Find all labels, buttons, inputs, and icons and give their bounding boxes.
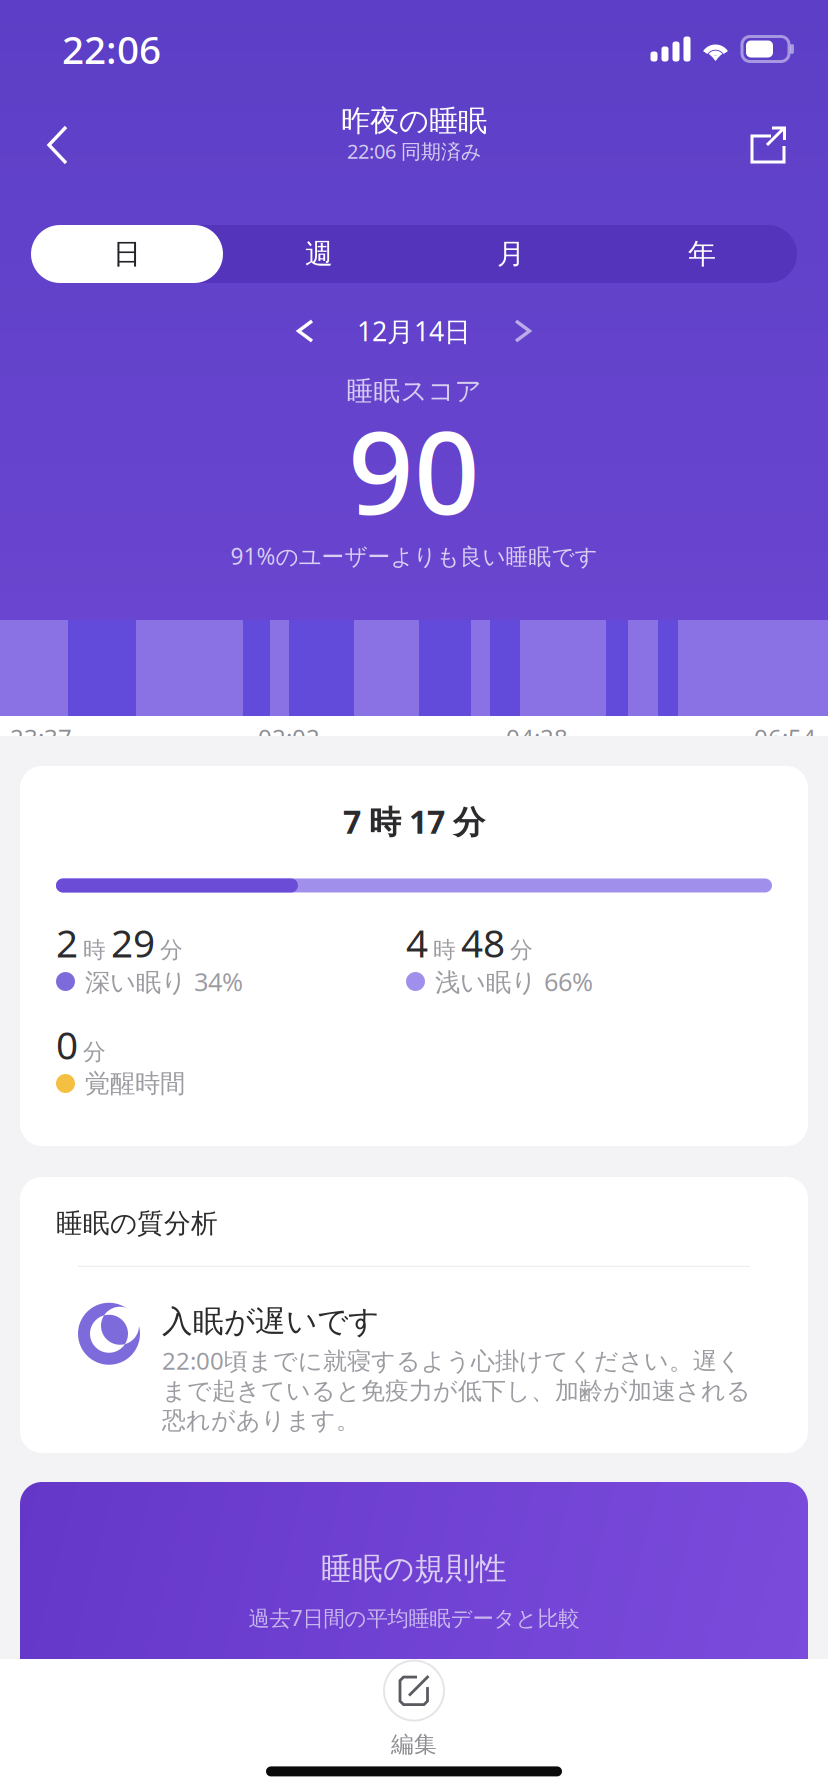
staticText: 日 bbox=[113, 237, 141, 271]
staticText: 週 bbox=[305, 237, 333, 271]
staticText: 浅い眠り 66% bbox=[435, 965, 593, 998]
staticText: 分 bbox=[83, 1038, 106, 1066]
staticText: 06:54 bbox=[754, 722, 816, 753]
staticText: 睡眠スコア bbox=[346, 375, 481, 407]
staticText: 睡眠の質分析 bbox=[56, 1207, 218, 1240]
staticText: 0 bbox=[56, 1019, 78, 1070]
button[interactable]: 年 bbox=[607, 225, 797, 283]
staticText: 編集 bbox=[391, 1731, 437, 1758]
staticText: 年 bbox=[688, 237, 716, 271]
staticText: 29 bbox=[111, 917, 155, 968]
staticText: 入眠が遅いです bbox=[162, 1303, 379, 1340]
button[interactable]: Back bbox=[18, 101, 98, 189]
button[interactable]: Next day bbox=[490, 307, 556, 355]
staticText: 48 bbox=[461, 917, 505, 968]
button[interactable]: Share bbox=[726, 102, 810, 188]
staticText: 22:06 同期済み bbox=[347, 138, 481, 164]
staticText: 7 時 17 分 bbox=[343, 800, 485, 842]
staticText: 分 bbox=[160, 936, 183, 964]
staticText: 分 bbox=[510, 936, 533, 964]
staticText: 時 bbox=[433, 936, 456, 964]
staticText: 12月14日 bbox=[357, 313, 471, 349]
staticText: 04:28 bbox=[506, 722, 568, 753]
staticText: 過去7日間の平均睡眠データと比較 bbox=[248, 1604, 579, 1632]
staticText: 月 bbox=[497, 237, 525, 271]
staticText: 02:02 bbox=[258, 722, 320, 753]
staticText: 2 bbox=[56, 917, 78, 968]
button[interactable]: Previous day bbox=[272, 307, 338, 355]
staticText: 22:06 bbox=[62, 23, 161, 75]
staticText: 睡眠の規則性 bbox=[321, 1550, 507, 1588]
staticText: 深い眠り 34% bbox=[85, 965, 243, 998]
staticText: 90 bbox=[348, 394, 480, 546]
staticText: 4 bbox=[406, 917, 428, 968]
staticText: 昨夜の睡眠 bbox=[341, 103, 487, 139]
staticText: 時 bbox=[83, 936, 106, 964]
staticText: 23:37 bbox=[10, 722, 72, 753]
button[interactable]: 週 bbox=[223, 225, 415, 283]
button[interactable]: 月 bbox=[415, 225, 607, 283]
button[interactable]: 編集 bbox=[314, 1659, 514, 1758]
button[interactable]: 日 bbox=[31, 225, 223, 283]
staticText: 22:00頃までに就寝するよう心掛けてください。遅くまで起きていると免疫力が低下… bbox=[162, 1344, 751, 1435]
staticText: 覚醒時間 bbox=[85, 1068, 185, 1099]
staticText: 91%のユーザーよりも良い睡眠です bbox=[230, 541, 597, 571]
